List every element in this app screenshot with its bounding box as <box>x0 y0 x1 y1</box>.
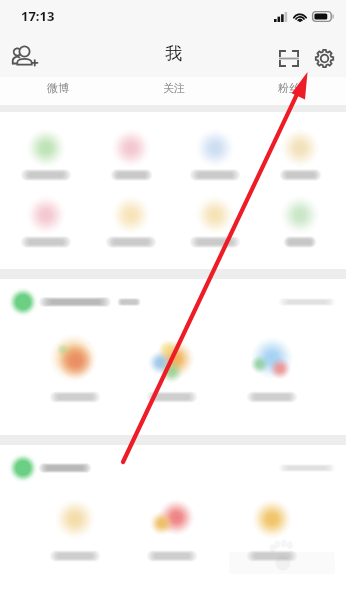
staticText: 关注 <box>163 81 185 95</box>
button[interactable] <box>228 492 316 563</box>
button[interactable] <box>261 128 339 182</box>
button[interactable] <box>31 333 119 404</box>
button[interactable] <box>228 333 316 404</box>
button[interactable] <box>92 195 170 249</box>
button[interactable] <box>261 195 339 249</box>
button[interactable]: Settings <box>306 40 342 76</box>
button[interactable] <box>128 492 216 563</box>
button[interactable]: 微博 <box>0 77 116 105</box>
staticText: 17:13 <box>21 7 55 25</box>
button[interactable]: 查看更多 <box>278 295 336 309</box>
button[interactable]: Scan <box>271 40 307 76</box>
button[interactable] <box>176 195 254 249</box>
button[interactable]: Add friends <box>4 35 44 75</box>
staticText: 微博 <box>47 81 69 95</box>
button[interactable]: 粉丝 <box>231 77 346 105</box>
button[interactable] <box>31 492 119 563</box>
button[interactable]: 关注 <box>116 77 231 105</box>
button[interactable] <box>128 333 216 404</box>
button[interactable]: 查看更多 <box>278 461 336 475</box>
button[interactable] <box>7 195 85 249</box>
staticText: 粉丝 <box>278 81 300 95</box>
staticText: 我 <box>165 43 182 64</box>
button[interactable] <box>92 128 170 182</box>
button[interactable] <box>176 128 254 182</box>
button[interactable] <box>7 128 85 182</box>
